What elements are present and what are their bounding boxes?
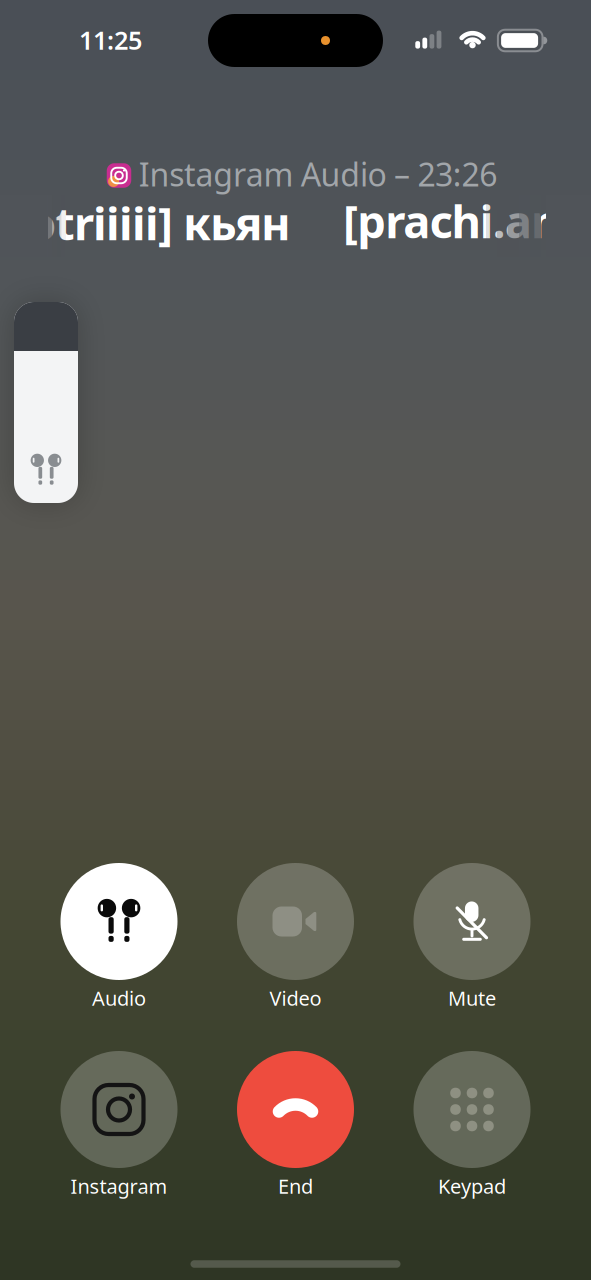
staticText: End <box>278 1173 313 1199</box>
button[interactable]: End <box>207 1051 383 1203</box>
staticText: Keypad <box>438 1173 506 1199</box>
staticText: Video <box>269 985 321 1011</box>
button[interactable]: Audio <box>31 863 207 1015</box>
button[interactable]: Instagram <box>31 1051 207 1203</box>
button[interactable]: Keypad <box>384 1051 560 1203</box>
staticText: [prachi.an <box>343 191 560 251</box>
staticText: Audio <box>92 985 146 1011</box>
staticText: otriiiii] кьян <box>28 193 291 253</box>
button[interactable]: Mute <box>384 863 560 1015</box>
staticText: Instagram <box>70 1173 167 1199</box>
staticText: 11:25 <box>79 23 142 57</box>
button[interactable]: Video <box>207 863 383 1015</box>
staticText: Mute <box>448 985 496 1011</box>
staticText: Instagram Audio – 23:26 <box>139 153 497 195</box>
